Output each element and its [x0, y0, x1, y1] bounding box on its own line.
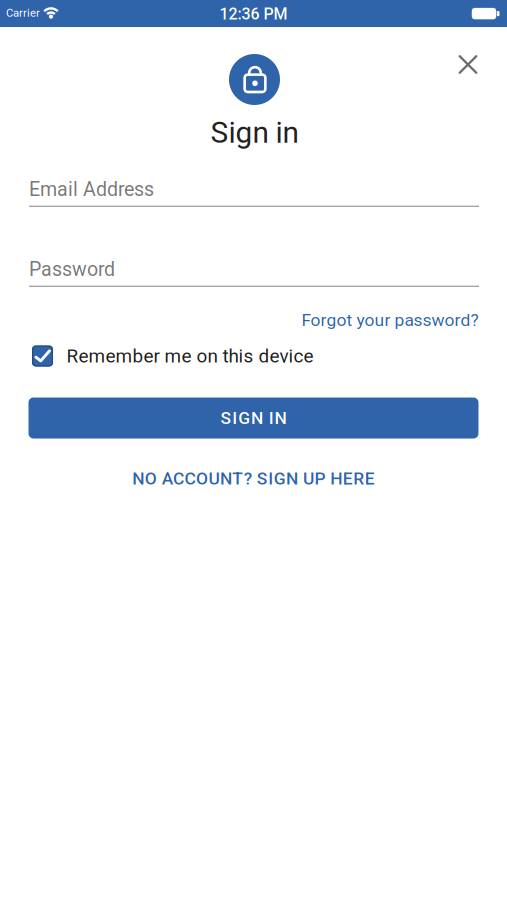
button[interactable]: NO ACCOUNT? SIGN UP HERE [132, 468, 375, 489]
staticText: NO ACCOUNT? SIGN UP HERE [132, 468, 375, 489]
staticText: SIGN IN [220, 408, 287, 428]
staticText: Password [29, 258, 115, 281]
staticText: Remember me on this device [66, 345, 313, 367]
button[interactable]: Remember me on this device [32, 345, 479, 367]
staticText: Sign in [210, 115, 298, 150]
staticText: 12:36 PM [219, 5, 287, 23]
button[interactable]: Password [29, 256, 479, 292]
button[interactable]: SIGN IN [28, 397, 478, 438]
button[interactable]: Close [452, 48, 484, 81]
button[interactable]: Forgot your password? [28, 310, 478, 330]
staticText: Carrier [6, 6, 40, 20]
staticText: Forgot your password? [301, 310, 478, 330]
button[interactable]: Email Address [29, 176, 479, 212]
staticText: Email Address [29, 178, 154, 201]
